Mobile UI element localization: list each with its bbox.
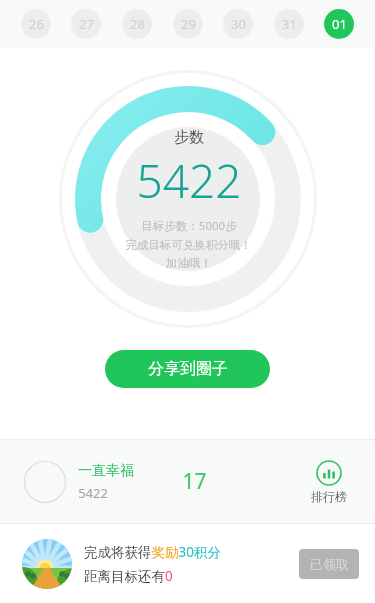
staticText: 完成目标可兑换积分哦！ — [125, 238, 252, 252]
staticText: 加油哦！ — [166, 256, 212, 270]
button[interactable]: 26 — [21, 9, 51, 39]
staticText: 27 — [79, 15, 94, 33]
staticText: 30 — [231, 15, 246, 33]
staticText: 29 — [181, 15, 196, 33]
staticText: 31 — [282, 15, 297, 33]
staticText: 步数 — [174, 128, 204, 147]
staticText: 5422 — [136, 149, 242, 212]
button[interactable]: 29 — [173, 9, 203, 39]
staticText: 已领取 — [310, 556, 349, 572]
button[interactable]: 分享到圈子 — [105, 350, 270, 388]
button[interactable]: 已领取 — [299, 549, 359, 579]
staticText: 目标步数：5000步 — [141, 218, 237, 234]
staticText: 分享到圈子 — [148, 359, 228, 379]
staticText: 01 — [332, 15, 347, 33]
button[interactable]: 31 — [274, 9, 304, 39]
staticText: 排行榜 — [311, 489, 347, 504]
button[interactable]: 排行榜 — [307, 456, 351, 508]
button[interactable]: 一直幸福 — [0, 440, 375, 523]
button[interactable]: 28 — [122, 9, 152, 39]
button[interactable]: 30 — [223, 9, 253, 39]
staticText: 距离目标还有0 — [84, 567, 173, 585]
button[interactable]: 27 — [71, 9, 101, 39]
staticText: 28 — [130, 15, 145, 33]
staticText: 26 — [29, 15, 44, 33]
staticText: 一直幸福 — [78, 462, 134, 480]
staticText: 5422 — [78, 484, 108, 502]
button[interactable]: 01 — [324, 9, 354, 39]
staticText: 完成将获得奖励30积分 — [84, 543, 221, 561]
button[interactable]: 完成将获得奖励30积分 — [0, 524, 375, 603]
staticText: 17 — [182, 467, 207, 496]
